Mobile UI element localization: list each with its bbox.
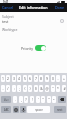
button[interactable]: Change keyboard — [13, 106, 19, 113]
button[interactable]: ( — [23, 85, 27, 92]
staticText: “ — [42, 97, 44, 102]
button[interactable]: ? — [24, 96, 28, 103]
staticText: 4 — [18, 76, 20, 81]
button[interactable]: ; — [17, 85, 21, 92]
button[interactable]: • — [52, 96, 56, 103]
button[interactable]: Done — [53, 3, 67, 12]
button[interactable]: $ — [34, 85, 38, 92]
staticText: 6 — [29, 76, 31, 81]
staticText: 3 — [13, 76, 15, 81]
staticText: ) — [29, 86, 31, 91]
button[interactable]: 2 — [6, 75, 10, 82]
button[interactable]: , — [19, 96, 23, 103]
staticText: 5 — [24, 76, 26, 81]
staticText: 8 — [40, 76, 42, 81]
staticText: + — [63, 76, 65, 81]
button[interactable]: . — [13, 96, 17, 103]
staticText: test — [2, 19, 9, 24]
staticText: ” — [48, 97, 50, 102]
button[interactable]: 9 — [45, 75, 49, 82]
button[interactable]: “ — [41, 96, 45, 103]
button[interactable]: 8 — [39, 75, 43, 82]
button[interactable]: Backspace — [58, 96, 66, 103]
staticText: - — [57, 76, 59, 81]
button[interactable]: Cancel — [0, 3, 16, 12]
button[interactable]: 1 — [1, 75, 5, 82]
staticText: 9:41 — [3, 0, 9, 3]
staticText: , — [21, 97, 22, 102]
button[interactable]: 3 — [12, 75, 16, 82]
button[interactable]: " — [51, 85, 55, 92]
button[interactable]: 5 — [23, 75, 27, 82]
staticText: • — [53, 97, 55, 102]
button[interactable]: @ — [45, 85, 49, 92]
staticText: ' — [38, 97, 39, 102]
button[interactable]: Priority — [0, 42, 67, 54]
button[interactable]: - — [1, 85, 5, 92]
button[interactable]: 0 — [51, 75, 55, 82]
staticText: 2 — [7, 76, 9, 81]
staticText: 7 — [35, 76, 37, 81]
button[interactable]: next — [54, 106, 66, 113]
staticText: ? — [25, 97, 27, 102]
button[interactable]: # — [62, 85, 66, 92]
button[interactable]: Subject — [0, 13, 67, 26]
staticText: & — [40, 86, 43, 91]
staticText: / — [7, 86, 9, 91]
button[interactable]: ' — [36, 96, 40, 103]
staticText: next — [57, 108, 63, 112]
button[interactable]: ABC — [1, 106, 11, 113]
staticText: $ — [35, 86, 37, 91]
staticText: 0 — [52, 76, 54, 81]
button[interactable]: 6 — [28, 75, 32, 82]
staticText: Worktype — [2, 27, 18, 32]
button[interactable]: #+= — [1, 96, 11, 103]
button[interactable]: Clear text — [60, 19, 64, 23]
staticText: Cancel — [2, 5, 14, 10]
staticText: Done — [55, 5, 65, 10]
staticText: space — [35, 108, 43, 112]
staticText: ( — [24, 86, 26, 91]
staticText: 9 — [46, 76, 48, 81]
staticText: Priority — [21, 46, 33, 51]
staticText: . — [15, 97, 16, 102]
button[interactable]: ” — [47, 96, 51, 103]
staticText: Subject — [2, 14, 14, 19]
staticText: 1 — [2, 76, 4, 81]
button[interactable]: ) — [28, 85, 32, 92]
button[interactable]: space — [27, 106, 50, 113]
staticText: # — [63, 86, 66, 91]
button[interactable]: * — [56, 85, 60, 92]
staticText: Edit information — [19, 5, 48, 10]
staticText: - — [2, 86, 4, 91]
staticText: ABC — [4, 108, 9, 112]
button[interactable]: ! — [30, 96, 34, 103]
staticText: #+= — [4, 98, 9, 102]
button[interactable]: Dictation — [20, 106, 26, 113]
button[interactable]: : — [12, 85, 16, 92]
staticText: " — [52, 86, 54, 91]
button[interactable]: / — [6, 85, 10, 92]
button[interactable]: + — [62, 75, 66, 82]
button[interactable]: & — [39, 85, 43, 92]
button[interactable]: 4 — [17, 75, 21, 82]
staticText: @ — [45, 86, 49, 91]
staticText: : — [14, 86, 15, 91]
staticText: ! — [32, 97, 33, 102]
button[interactable]: - — [56, 75, 60, 82]
staticText: * — [57, 86, 59, 91]
button[interactable]: 7 — [34, 75, 38, 82]
button[interactable] — [0, 26, 67, 34]
staticText: ; — [19, 86, 20, 91]
